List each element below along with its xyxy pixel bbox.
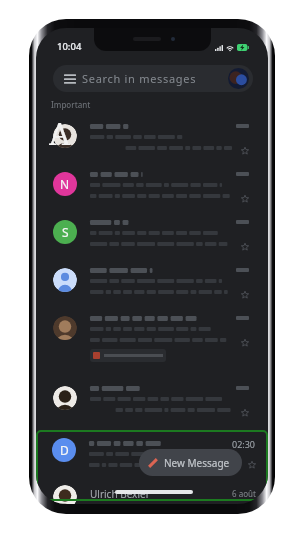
staticText: D xyxy=(60,442,69,458)
button[interactable]: S xyxy=(36,214,268,262)
button[interactable]: D xyxy=(36,428,268,482)
staticText: Search in messages xyxy=(82,71,197,86)
staticText: Important xyxy=(51,99,91,110)
button[interactable]: Open navigation menu xyxy=(53,65,253,92)
button[interactable] xyxy=(36,262,268,310)
staticText: 6 août xyxy=(232,488,256,499)
staticText: N xyxy=(60,176,70,192)
button[interactable] xyxy=(36,310,268,380)
button[interactable]: Ulrich Bexler xyxy=(36,482,268,504)
staticText: 02:30 xyxy=(232,438,256,450)
other: Open navigation menu xyxy=(64,74,76,83)
button[interactable] xyxy=(36,118,268,166)
staticText: New Message xyxy=(164,456,230,470)
staticText: S xyxy=(62,224,69,240)
staticText: 10:04 xyxy=(57,40,82,53)
button[interactable] xyxy=(36,380,268,428)
button[interactable]: N xyxy=(36,166,268,214)
button[interactable]: New Message xyxy=(139,449,242,476)
button[interactable]: Account xyxy=(228,68,249,89)
staticText: Ulrich Bexler xyxy=(90,487,226,501)
staticText: A xyxy=(49,113,71,154)
